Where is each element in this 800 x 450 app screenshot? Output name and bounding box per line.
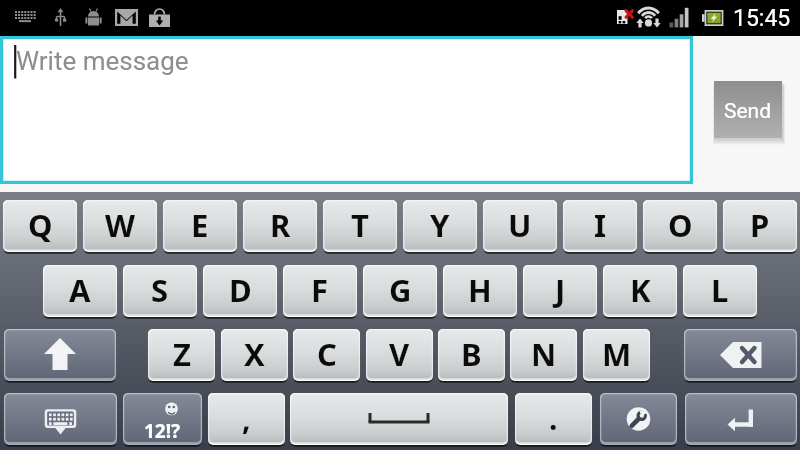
staticText: T: [351, 204, 369, 246]
button[interactable]: Space: [290, 393, 508, 445]
button[interactable]: X: [221, 329, 288, 381]
button[interactable]: E: [163, 200, 237, 252]
staticText: I: [594, 204, 607, 246]
button[interactable]: Z: [148, 329, 215, 381]
button[interactable]: A: [43, 265, 117, 317]
staticText: R: [270, 204, 291, 246]
button[interactable]: Y: [403, 200, 477, 252]
staticText: H: [468, 269, 492, 311]
button[interactable]: D: [203, 265, 277, 317]
staticText: G: [389, 269, 412, 311]
button[interactable]: S: [123, 265, 197, 317]
button[interactable]: O: [643, 200, 717, 252]
button[interactable]: Shift: [4, 329, 116, 381]
button[interactable]: Q: [3, 200, 77, 252]
staticText: F: [311, 269, 329, 311]
staticText: E: [191, 204, 209, 246]
button[interactable]: G: [363, 265, 437, 317]
staticText: Q: [28, 204, 53, 246]
staticText: Z: [173, 333, 191, 375]
staticText: L: [711, 269, 729, 311]
staticText: S: [151, 269, 169, 311]
staticText: V: [389, 333, 410, 375]
button[interactable]: Send: [714, 81, 782, 138]
button[interactable]: L: [683, 265, 757, 317]
button[interactable]: J: [523, 265, 597, 317]
button[interactable]: R: [243, 200, 317, 252]
staticText: D: [229, 269, 252, 311]
button[interactable]: .: [515, 393, 592, 445]
button[interactable]: V: [366, 329, 433, 381]
staticText: Write message: [16, 46, 189, 76]
staticText: X: [244, 333, 265, 375]
staticText: W: [105, 204, 135, 246]
staticText: 12!?: [144, 418, 181, 444]
staticText: ,: [242, 398, 251, 439]
staticText: N: [531, 333, 557, 375]
button[interactable]: H: [443, 265, 517, 317]
button[interactable]: F: [283, 265, 357, 317]
staticText: K: [630, 269, 651, 311]
staticText: P: [750, 204, 770, 246]
button[interactable]: U: [483, 200, 557, 252]
button[interactable]: C: [293, 329, 360, 381]
staticText: B: [461, 333, 482, 375]
button[interactable]: B: [438, 329, 505, 381]
button[interactable]: I: [563, 200, 637, 252]
staticText: .: [549, 398, 558, 439]
button[interactable]: Enter: [685, 393, 797, 445]
staticText: Y: [430, 204, 450, 246]
button[interactable]: N: [510, 329, 577, 381]
button[interactable]: ,: [208, 393, 285, 445]
staticText: M: [602, 333, 632, 375]
staticText: Send: [724, 99, 772, 124]
button[interactable]: W: [83, 200, 157, 252]
staticText: A: [69, 269, 91, 311]
staticText: C: [317, 333, 337, 375]
button[interactable]: Hide keyboard: [4, 393, 117, 445]
button[interactable]: P: [723, 200, 797, 252]
staticText: J: [555, 269, 566, 311]
button[interactable]: Settings: [600, 393, 677, 445]
button[interactable]: 12!?: [123, 393, 202, 445]
button[interactable]: T: [323, 200, 397, 252]
staticText: O: [668, 204, 693, 246]
button[interactable]: Write message: [0, 36, 693, 184]
staticText: U: [508, 204, 532, 246]
button[interactable]: Backspace: [684, 329, 797, 381]
button[interactable]: K: [603, 265, 677, 317]
button[interactable]: M: [583, 329, 650, 381]
staticText: 15:45: [733, 5, 791, 32]
